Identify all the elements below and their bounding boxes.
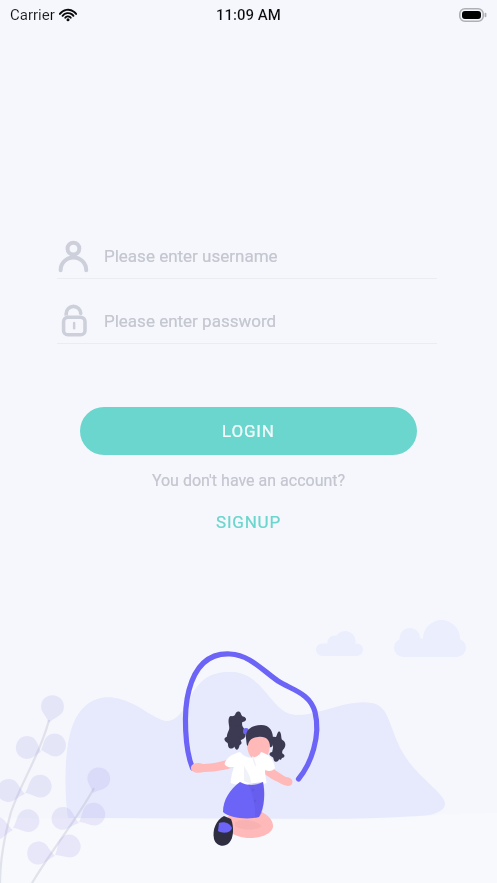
staticText: Please enter password — [104, 311, 277, 331]
other: Wi-Fi signal — [58, 7, 78, 23]
staticText: You don't have an account? — [0, 471, 497, 490]
button[interactable]: Please enter username — [57, 234, 437, 278]
button[interactable]: SIGNUP — [202, 509, 295, 535]
staticText: Please enter username — [104, 246, 278, 266]
staticText: LOGIN — [222, 421, 275, 441]
button[interactable]: LOGIN — [80, 407, 417, 455]
staticText: 11:09 AM — [216, 6, 281, 24]
button[interactable]: Please enter password — [57, 299, 437, 343]
other: Battery full — [459, 8, 487, 22]
staticText: Carrier — [10, 6, 55, 24]
staticText: SIGNUP — [216, 512, 281, 532]
